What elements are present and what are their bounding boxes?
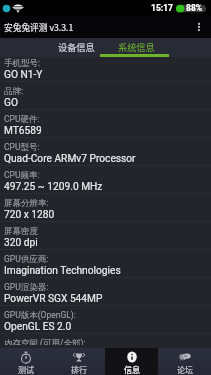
staticText: CPU频率: xyxy=(4,170,40,181)
staticText: CPU型号: xyxy=(4,142,40,153)
button[interactable]: 品牌: xyxy=(0,82,211,110)
staticText: MT6589 xyxy=(4,125,42,137)
staticText: 系统信息 xyxy=(118,40,155,53)
staticText: GO xyxy=(4,97,18,109)
button[interactable]: 屏幕分辨率: xyxy=(0,194,211,222)
button[interactable]: GPU渲染器: xyxy=(0,278,211,306)
staticText: 88% xyxy=(186,3,203,13)
staticText: 15:17 xyxy=(151,3,173,13)
button[interactable]: CPU硬件: xyxy=(0,110,211,138)
button[interactable]: GPU版本(OpenGL): xyxy=(0,306,211,334)
staticText: GO N1-Y xyxy=(4,69,43,81)
staticText: 品牌: xyxy=(4,86,24,97)
staticText: 320 dpi xyxy=(4,237,38,249)
button[interactable]: CPU频率: xyxy=(0,166,211,194)
staticText: CPU硬件: xyxy=(4,114,40,125)
button[interactable]: More options xyxy=(192,20,206,34)
button[interactable]: Test xyxy=(0,348,52,375)
staticText: Quad-Core ARMv7 Processor xyxy=(4,153,136,165)
button[interactable]: 系统信息 xyxy=(106,38,166,57)
staticText: 安兔兔评测 v3.3.1 xyxy=(4,21,74,34)
staticText: 信息 xyxy=(124,364,140,375)
staticText: Imagination Technologies xyxy=(4,265,121,277)
button[interactable]: Information xyxy=(105,348,158,375)
button[interactable]: 设备信息 xyxy=(46,38,106,57)
button[interactable]: 内存空间 (可用/全部): xyxy=(0,334,211,345)
staticText: 论坛 xyxy=(177,364,193,375)
staticText: GPU供应商: xyxy=(4,254,49,265)
staticText: GPU渲染器: xyxy=(4,282,49,293)
staticText: GPU版本(OpenGL): xyxy=(4,310,76,321)
staticText: 497.25 ~ 1209.0 MHz xyxy=(4,181,103,193)
staticText: 屏幕密度 xyxy=(4,226,38,237)
staticText: 内存空间 (可用/全部): xyxy=(4,338,86,345)
button[interactable]: GPU供应商: xyxy=(0,250,211,278)
button[interactable]: Forum xyxy=(158,348,211,375)
button[interactable]: CPU型号: xyxy=(0,138,211,166)
staticText: 测试 xyxy=(18,364,34,375)
staticText: 手机型号: xyxy=(4,58,41,69)
staticText: 屏幕分辨率: xyxy=(4,198,49,209)
button[interactable]: Ranking xyxy=(52,348,105,375)
staticText: 排行 xyxy=(71,364,87,375)
staticText: 720 x 1280 xyxy=(4,209,55,221)
button[interactable]: 手机型号: xyxy=(0,54,211,82)
staticText: OpenGL ES 2.0 xyxy=(4,321,72,333)
staticText: PowerVR SGX 544MP xyxy=(4,293,103,305)
staticText: 设备信息 xyxy=(58,40,95,53)
button[interactable]: 屏幕密度 xyxy=(0,222,211,250)
